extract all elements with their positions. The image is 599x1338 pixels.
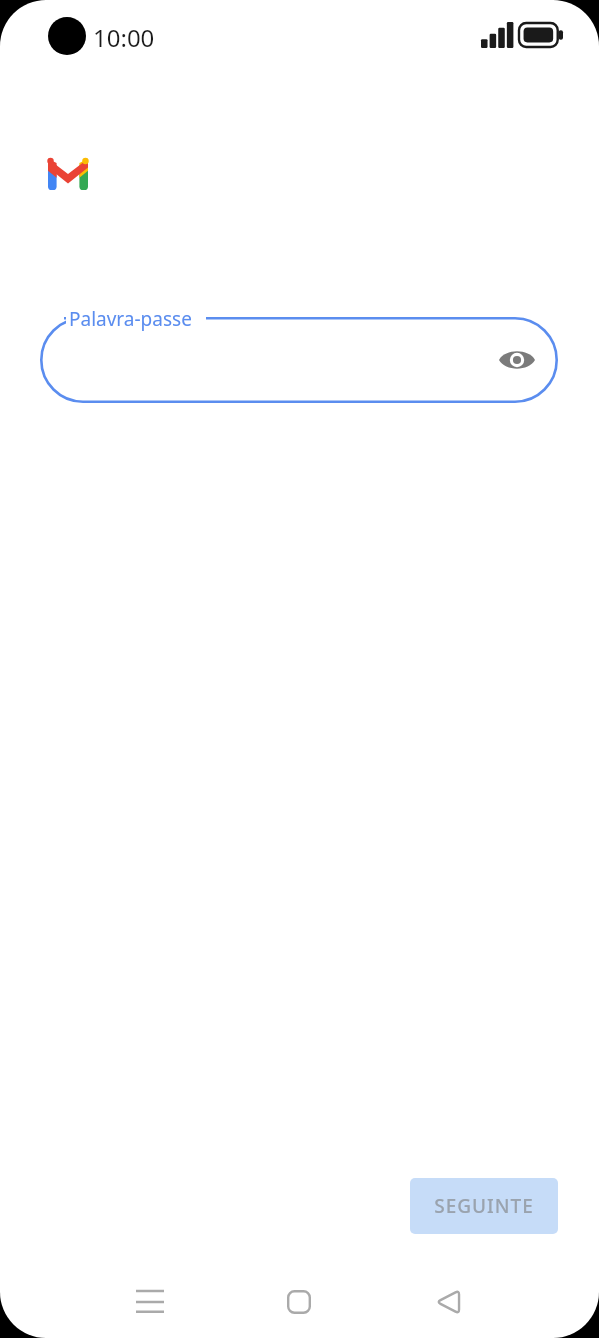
button[interactable]: Mostrar palavra-passe xyxy=(494,337,540,383)
button[interactable]: SEGUINTE xyxy=(410,1178,558,1234)
button[interactable]: Início xyxy=(269,1272,329,1332)
button[interactable]: Voltar xyxy=(418,1272,478,1332)
button[interactable]: Recentes xyxy=(120,1272,180,1332)
staticText: Palavra-passe xyxy=(69,306,192,332)
button[interactable]: Palavra-passe xyxy=(40,317,558,403)
staticText: SEGUINTE xyxy=(434,1193,534,1219)
staticText: 10:00 xyxy=(93,21,155,54)
